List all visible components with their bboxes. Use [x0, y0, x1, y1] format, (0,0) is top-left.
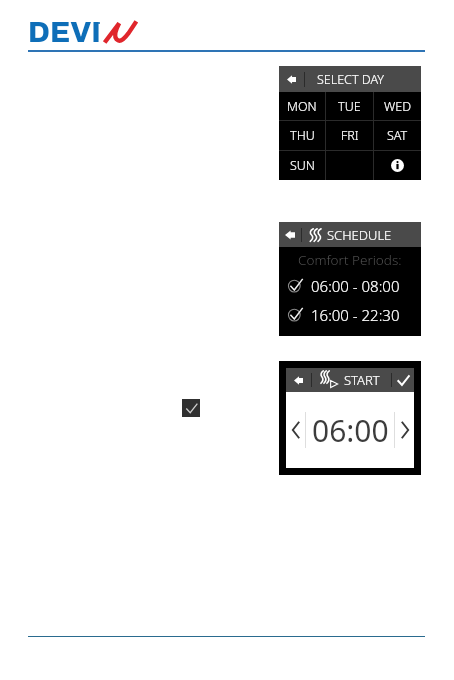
staticText: FRI — [341, 127, 359, 144]
button[interactable]: SUN — [279, 151, 325, 180]
staticText: DEVI — [28, 17, 101, 47]
staticText: WED — [384, 98, 412, 115]
button[interactable]: TUE — [326, 92, 373, 120]
staticText: Comfort Periods: — [298, 251, 402, 269]
button[interactable]: Back — [279, 222, 301, 247]
staticText: MON — [287, 98, 317, 115]
staticText: SCHEDULE — [327, 226, 392, 244]
button[interactable]: 06:00 - 08:00 — [279, 274, 421, 297]
staticText: TUE — [338, 98, 361, 115]
button[interactable]: SAT — [374, 121, 421, 150]
staticText: SUN — [290, 157, 315, 174]
button[interactable]: Confirm — [392, 368, 414, 392]
button[interactable]: Back — [279, 66, 304, 92]
button[interactable]: THU — [279, 121, 325, 150]
staticText: START — [344, 371, 380, 389]
staticText: THU — [290, 127, 315, 144]
staticText: 06:00 - 08:00 — [311, 276, 400, 296]
button[interactable]: 16:00 - 22:30 — [279, 303, 421, 326]
button[interactable]: MON — [279, 92, 325, 120]
staticText: SAT — [387, 127, 408, 144]
staticText: SELECT DAY — [317, 71, 384, 88]
button[interactable] — [374, 151, 421, 180]
button[interactable]: FRI — [326, 121, 373, 150]
staticText: 06:00 — [312, 410, 389, 451]
button[interactable]: Previous — [286, 392, 305, 468]
button[interactable]: WED — [374, 92, 421, 120]
button[interactable]: Back — [286, 368, 311, 392]
button[interactable]: Next — [395, 392, 414, 468]
button[interactable]: Checkbox checked — [182, 399, 200, 417]
staticText: 16:00 - 22:30 — [311, 305, 400, 325]
